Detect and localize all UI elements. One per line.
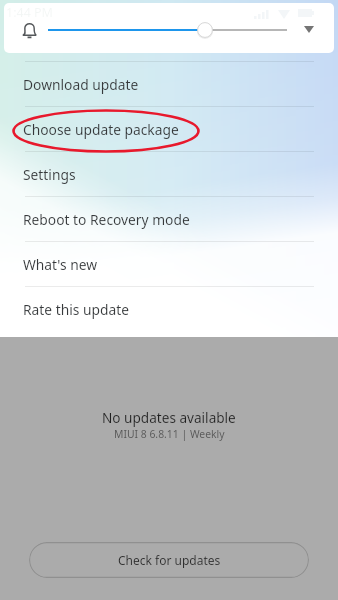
staticText: Settings bbox=[23, 165, 76, 184]
button[interactable] bbox=[44, 19, 300, 41]
staticText: 1:44 PM bbox=[6, 4, 53, 21]
staticText: MIUI 8 6.8.11 | Weekly bbox=[114, 427, 225, 441]
button[interactable]: Notifications bbox=[16, 17, 42, 43]
staticText: Reboot to Recovery mode bbox=[23, 210, 190, 229]
button[interactable]: Rate this update bbox=[0, 287, 338, 331]
button[interactable]: What's new bbox=[0, 242, 338, 287]
staticText: Rate this update bbox=[23, 300, 129, 319]
button[interactable]: Choose update package bbox=[0, 107, 338, 152]
button[interactable]: Reboot to Recovery mode bbox=[0, 197, 338, 242]
staticText: Check for updates bbox=[118, 552, 221, 568]
staticText: No updates available bbox=[102, 408, 236, 427]
button[interactable]: Expand bbox=[298, 19, 319, 40]
staticText: What's new bbox=[23, 255, 98, 274]
button[interactable]: Check for updates bbox=[29, 542, 309, 578]
staticText: Download update bbox=[23, 75, 139, 94]
button[interactable]: Settings bbox=[0, 152, 338, 197]
staticText: Choose update package bbox=[23, 120, 179, 139]
button[interactable]: Download update bbox=[0, 61, 338, 107]
